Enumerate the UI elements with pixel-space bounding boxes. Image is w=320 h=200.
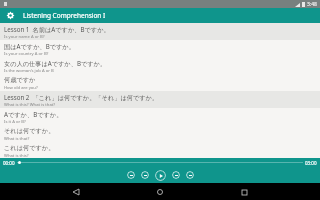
staticText: 03:00 [305,160,317,166]
staticText: 女の人の仕事はAですか、Bですか。 [4,59,107,67]
button[interactable]: これは何ですか。 [0,142,320,158]
button[interactable]: Forward [172,171,180,179]
staticText: Is your country A or B? [4,51,49,57]
button[interactable]: Settings [5,10,16,21]
staticText: Is the woman's job A or B [4,68,54,74]
button[interactable]: Lesson 1 名前はAですか、Bですか。 [0,23,320,40]
staticText: 何歳ですか [4,76,36,84]
staticText: What is that? [4,136,30,142]
staticText: 国はAですか、Bですか。 [4,42,75,50]
button[interactable]: Previous [127,171,135,179]
button[interactable]: 国はAですか、Bですか。 [0,40,320,57]
button[interactable]: Rewind [141,171,149,179]
staticText: Aですか、Bですか。 [4,110,63,118]
staticText: How old are you? [4,85,38,91]
staticText: これは何ですか。 [4,144,55,152]
button[interactable]: それは何ですか。 [0,125,320,142]
staticText: Lesson 2 「これ」は何ですか。「それ」は何ですか。 [4,93,159,101]
button[interactable]: 女の人の仕事はAですか、Bですか。 [0,57,320,74]
staticText: What is this? [4,153,29,158]
staticText: Lesson 1 名前はAですか、Bですか。 [4,25,110,33]
button[interactable]: Lesson 2 「これ」は何ですか。「それ」は何ですか。 [0,91,320,108]
button[interactable]: Play [155,170,166,181]
staticText: 3:48 [307,1,317,8]
button[interactable]: Back [68,184,84,200]
staticText: それは何ですか。 [4,127,55,135]
button[interactable]: Recents [236,184,252,200]
staticText: Is it A or B? [4,119,26,125]
button[interactable]: Aですか、Bですか。 [0,108,320,125]
button[interactable]: Seek [17,158,303,167]
button[interactable]: Home [152,184,168,200]
staticText: What is this? What is that? [4,102,56,108]
staticText: 00:00 [3,160,15,166]
button[interactable]: Next [186,171,194,179]
staticText: Listening Comprehension I [23,11,106,20]
button[interactable]: 何歳ですか [0,74,320,91]
staticText: Is your name A or B? [4,34,45,40]
